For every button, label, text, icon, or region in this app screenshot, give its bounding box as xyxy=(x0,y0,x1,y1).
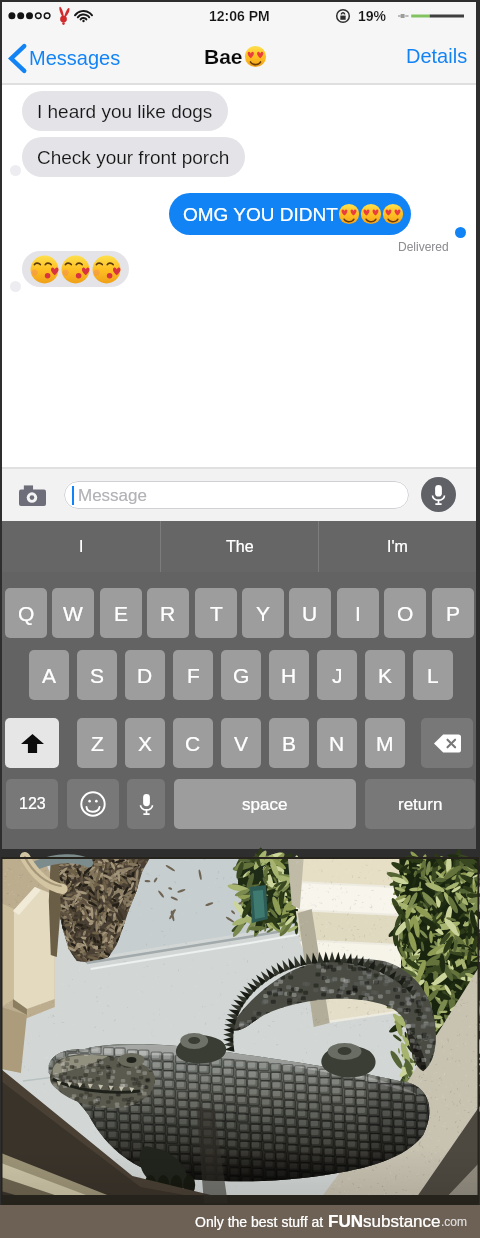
button[interactable]: S xyxy=(77,650,117,700)
staticText: Z xyxy=(91,732,104,755)
button[interactable]: Check your front porch xyxy=(22,137,245,177)
staticText: OMG YOU DIDNT xyxy=(183,204,338,225)
staticText: H xyxy=(281,664,297,687)
button[interactable]: O xyxy=(384,588,426,638)
button[interactable]: J xyxy=(317,650,357,700)
button[interactable]: I xyxy=(337,588,379,638)
staticText: Check your front porch xyxy=(37,147,230,168)
button[interactable]: Shift xyxy=(5,718,59,768)
staticText: The xyxy=(226,538,254,556)
staticText: X xyxy=(138,732,153,755)
staticText: .com xyxy=(441,1215,468,1228)
staticText: O xyxy=(397,602,414,625)
button[interactable]: A xyxy=(29,650,69,700)
button[interactable]: M xyxy=(365,718,405,768)
button[interactable]: B xyxy=(269,718,309,768)
staticText: N xyxy=(329,732,345,755)
button[interactable]: OMG YOU DIDNT xyxy=(169,193,411,235)
staticText: I heard you like dogs xyxy=(37,101,213,122)
staticText: F xyxy=(187,664,200,687)
button[interactable]: L xyxy=(413,650,453,700)
staticText: I xyxy=(79,538,84,556)
staticText: Delivered xyxy=(398,240,449,253)
staticText: space xyxy=(242,795,288,814)
staticText: S xyxy=(90,664,105,687)
staticText: M xyxy=(376,732,394,755)
button[interactable]: I'm xyxy=(319,521,476,572)
staticText: I'm xyxy=(387,538,408,556)
button[interactable]: V xyxy=(221,718,261,768)
button[interactable]: Q xyxy=(5,588,47,638)
button[interactable]: Delete xyxy=(421,718,473,768)
button[interactable]: P xyxy=(432,588,474,638)
button[interactable]: E xyxy=(100,588,142,638)
button[interactable]: D xyxy=(125,650,165,700)
button[interactable]: G xyxy=(221,650,261,700)
button[interactable]: R xyxy=(147,588,189,638)
staticText: Bae xyxy=(204,45,243,68)
staticText: Y xyxy=(256,602,271,625)
button[interactable]: Y xyxy=(242,588,284,638)
button[interactable]: Emoji keyboard xyxy=(67,779,119,829)
staticText: A xyxy=(42,664,57,687)
staticText: V xyxy=(234,732,249,755)
staticText: J xyxy=(332,664,343,687)
button[interactable]: H xyxy=(269,650,309,700)
staticText: L xyxy=(427,664,439,687)
staticText: B xyxy=(282,732,297,755)
staticText: P xyxy=(446,602,461,625)
staticText: E xyxy=(114,602,129,625)
button[interactable]: I xyxy=(2,521,160,572)
button[interactable]: Dictation xyxy=(127,779,165,829)
staticText: 12:06 PM xyxy=(209,8,270,24)
button[interactable]: C xyxy=(173,718,213,768)
staticText: G xyxy=(233,664,250,687)
button[interactable]: Voice message xyxy=(421,477,456,512)
button[interactable]: Details xyxy=(398,37,476,75)
button[interactable]: I heard you like dogs xyxy=(22,91,228,131)
button[interactable]: space xyxy=(174,779,356,829)
button[interactable]: Camera xyxy=(14,481,50,509)
staticText: R xyxy=(160,602,176,625)
staticText: Q xyxy=(18,602,35,625)
staticText: T xyxy=(210,602,223,625)
button[interactable]: return xyxy=(365,779,475,829)
staticText: 123 xyxy=(19,795,46,813)
staticText: Message xyxy=(78,486,147,505)
staticText: K xyxy=(378,664,393,687)
staticText: I xyxy=(355,602,361,625)
button[interactable]: X xyxy=(125,718,165,768)
button[interactable]: Z xyxy=(77,718,117,768)
staticText: Details xyxy=(406,45,468,67)
button[interactable]: T xyxy=(195,588,237,638)
button[interactable]: W xyxy=(52,588,94,638)
staticText: Messages xyxy=(29,47,121,69)
button[interactable]: U xyxy=(289,588,331,638)
staticText: substance xyxy=(363,1212,441,1231)
staticText: FUN xyxy=(328,1212,363,1231)
button[interactable]: F xyxy=(173,650,213,700)
staticText: return xyxy=(398,795,443,814)
staticText: Only the best stuff at xyxy=(195,1214,328,1230)
button[interactable] xyxy=(22,251,129,287)
staticText: 19% xyxy=(358,8,387,24)
button[interactable]: Back to Messages xyxy=(2,38,131,78)
staticText: U xyxy=(302,602,318,625)
button[interactable]: Message xyxy=(64,481,409,509)
staticText: C xyxy=(185,732,201,755)
button[interactable]: N xyxy=(317,718,357,768)
staticText: D xyxy=(137,664,153,687)
staticText: W xyxy=(63,602,83,625)
button[interactable]: The xyxy=(161,521,318,572)
button[interactable]: K xyxy=(365,650,405,700)
button[interactable]: 123 xyxy=(6,779,58,829)
